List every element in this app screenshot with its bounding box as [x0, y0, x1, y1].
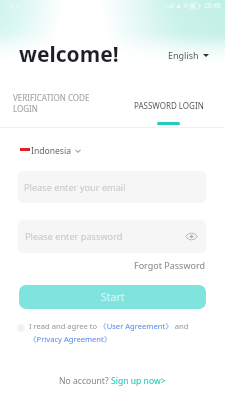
button[interactable]: Show password — [185, 230, 198, 243]
button[interactable]: VERIFICATION CODE LOGIN — [0, 88, 112, 128]
button[interactable]: PASSWORD LOGIN — [112, 88, 225, 128]
button[interactable]: Agree to terms — [17, 324, 25, 332]
button[interactable]: Please enter password — [18, 220, 206, 253]
button[interactable]: Forgot Password — [128, 256, 225, 275]
staticText: PASSWORD LOGIN — [134, 100, 204, 111]
staticText: 20:48 — [204, 1, 221, 10]
staticText: I read and agree to 《User Agreement》 and… — [29, 321, 189, 344]
staticText: Please enter your email — [24, 181, 126, 194]
staticText: Please enter password — [25, 230, 123, 243]
staticText: No account? — [59, 375, 111, 387]
staticText: welcome! — [19, 40, 119, 69]
staticText: Indonesia — [31, 145, 72, 157]
button[interactable]: Indonesia — [20, 143, 81, 159]
staticText: Start — [101, 290, 125, 304]
button[interactable]: English — [166, 45, 211, 65]
staticText: Sign up now> — [111, 375, 166, 387]
button[interactable]: Please enter your email — [18, 171, 206, 203]
button[interactable]: Start — [19, 285, 206, 309]
staticText: English — [168, 49, 199, 61]
staticText: VERIFICATION CODE LOGIN — [13, 92, 90, 115]
button[interactable]: Sign up now> — [111, 375, 166, 387]
